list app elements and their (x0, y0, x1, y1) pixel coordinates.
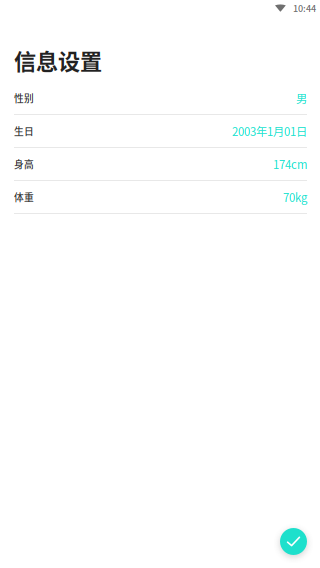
button[interactable]: 性别 (14, 82, 307, 115)
button[interactable]: 身高 (14, 148, 307, 181)
staticText: 10:44 (293, 1, 316, 14)
staticText: 生日 (14, 124, 34, 138)
button[interactable]: 生日 (14, 115, 307, 148)
button[interactable]: Confirm (280, 528, 307, 555)
staticText: 体重 (14, 190, 34, 204)
staticText: 性别 (14, 91, 34, 105)
staticText: 174cm (273, 156, 307, 172)
staticText: 2003年1月01日 (232, 123, 307, 139)
button[interactable]: 体重 (14, 181, 307, 214)
staticText: 身高 (14, 157, 34, 171)
staticText: 男 (296, 90, 307, 106)
staticText: 信息设置 (14, 44, 102, 76)
staticText: 70kg (283, 189, 307, 205)
